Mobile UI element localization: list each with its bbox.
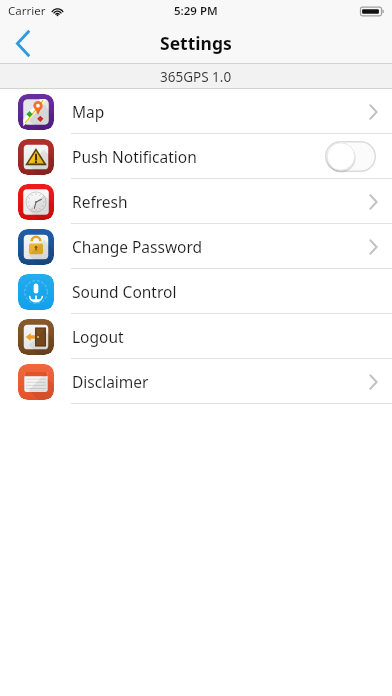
staticText: 365GPS 1.0 <box>160 68 232 86</box>
staticText: Settings <box>160 31 232 55</box>
button[interactable]: Back <box>0 22 46 64</box>
button[interactable]: Logout <box>0 314 392 359</box>
staticText: Push Notification <box>72 146 325 167</box>
button[interactable]: Push Notification toggle, off <box>325 141 376 172</box>
staticText: Change Password <box>72 236 369 257</box>
staticText: Disclaimer <box>72 371 369 392</box>
staticText: 5:29 PM <box>174 3 218 19</box>
staticText: Map <box>72 101 369 122</box>
button[interactable]: Refresh <box>0 179 392 224</box>
staticText: Sound Control <box>72 281 392 302</box>
staticText: Logout <box>72 326 392 347</box>
button[interactable]: Change Password <box>0 224 392 269</box>
button[interactable]: Map <box>0 89 392 134</box>
button[interactable]: Disclaimer <box>0 359 392 404</box>
button[interactable]: Push Notification <box>0 134 392 179</box>
button[interactable]: Sound Control <box>0 269 392 314</box>
staticText: Refresh <box>72 191 369 212</box>
staticText: Carrier <box>8 3 46 19</box>
